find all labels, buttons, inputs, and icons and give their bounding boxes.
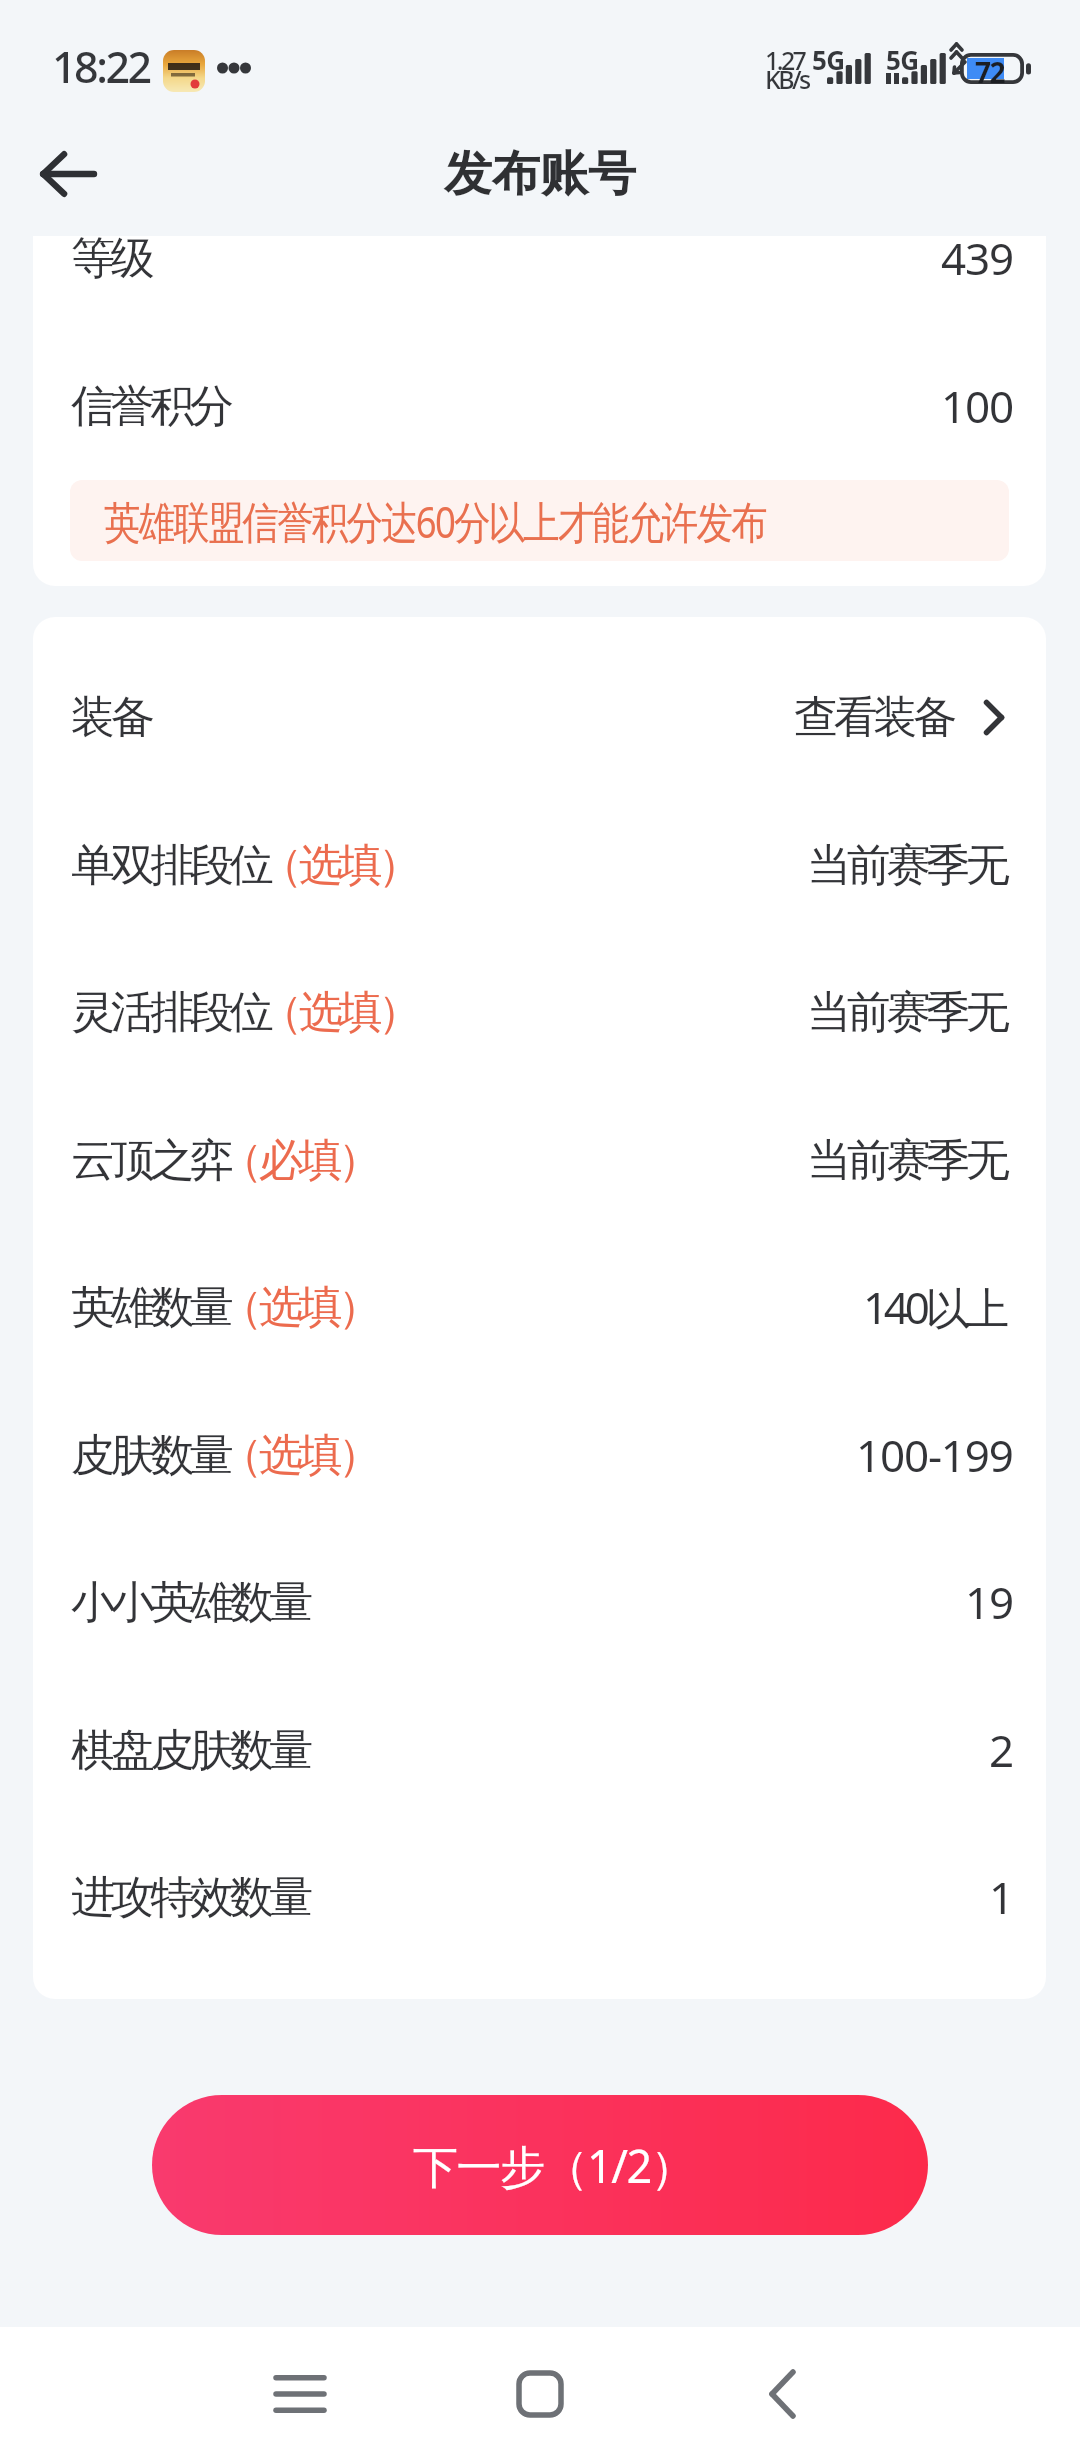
button[interactable]: 云顶之弈 bbox=[33, 1086, 1046, 1234]
staticText: 1 bbox=[989, 1867, 1013, 1927]
staticText: 等级 bbox=[71, 236, 151, 286]
staticText: 18:22 bbox=[52, 37, 150, 96]
staticText: 小小英雄数量 bbox=[71, 1575, 310, 1630]
staticText: 英雄联盟信誉积分达60分以上才能允许发布 bbox=[104, 491, 766, 551]
staticText: 1.27 bbox=[765, 43, 805, 77]
staticText: （选填） bbox=[259, 838, 418, 893]
button[interactable]: 等级 bbox=[33, 236, 1046, 332]
staticText: 72 bbox=[975, 53, 1005, 91]
button[interactable]: 信誉积分 bbox=[33, 332, 1046, 480]
staticText: （选填） bbox=[219, 1280, 378, 1335]
staticText: 当前赛季无 bbox=[807, 985, 1006, 1040]
staticText: 信誉积分 bbox=[71, 379, 230, 434]
button[interactable]: 装备 bbox=[33, 643, 1046, 791]
button[interactable]: 皮肤数量 bbox=[33, 1381, 1046, 1529]
staticText: 5G bbox=[886, 42, 919, 77]
button[interactable]: 进攻特效数量 bbox=[33, 1823, 1046, 1971]
staticText: 140以上 bbox=[863, 1277, 1006, 1337]
staticText: 当前赛季无 bbox=[807, 1133, 1006, 1188]
staticText: 云顶之弈 bbox=[71, 1133, 230, 1188]
button[interactable]: 小小英雄数量 bbox=[33, 1528, 1046, 1676]
staticText: 英雄数量 bbox=[71, 1280, 230, 1335]
staticText: （选填） bbox=[259, 985, 418, 1040]
button[interactable]: Back bbox=[722, 2334, 842, 2454]
button[interactable]: 单双排段位 bbox=[33, 791, 1046, 939]
staticText: 装备 bbox=[71, 690, 151, 745]
staticText: （选填） bbox=[219, 1428, 378, 1483]
staticText: 当前赛季无 bbox=[807, 838, 1006, 893]
staticText: 查看装备 bbox=[794, 690, 953, 745]
staticText: 单双排段位 bbox=[71, 838, 270, 893]
button[interactable]: Back bbox=[20, 126, 116, 222]
staticText: 进攻特效数量 bbox=[71, 1870, 310, 1925]
staticText: 发布账号 bbox=[444, 144, 636, 204]
staticText: （必填） bbox=[219, 1133, 378, 1188]
button[interactable]: 棋盘皮肤数量 bbox=[33, 1676, 1046, 1824]
staticText: 100-199 bbox=[856, 1425, 1013, 1485]
staticText: 灵活排段位 bbox=[71, 985, 270, 1040]
staticText: 19 bbox=[965, 1572, 1013, 1632]
staticText: 5G bbox=[812, 42, 845, 77]
button[interactable]: 灵活排段位 bbox=[33, 938, 1046, 1086]
button[interactable]: Recent apps bbox=[240, 2334, 360, 2454]
button[interactable]: 下一步（1/2） bbox=[152, 2095, 928, 2235]
staticText: 2 bbox=[989, 1720, 1013, 1780]
staticText: KB/s bbox=[765, 62, 809, 96]
button[interactable]: 英雄数量 bbox=[33, 1233, 1046, 1381]
staticText: 棋盘皮肤数量 bbox=[71, 1723, 310, 1778]
staticText: 100 bbox=[941, 376, 1013, 436]
button[interactable]: Home bbox=[480, 2334, 600, 2454]
staticText: 皮肤数量 bbox=[71, 1428, 230, 1483]
staticText: 下一步（1/2） bbox=[413, 2135, 695, 2196]
staticText: 439 bbox=[941, 236, 1013, 288]
